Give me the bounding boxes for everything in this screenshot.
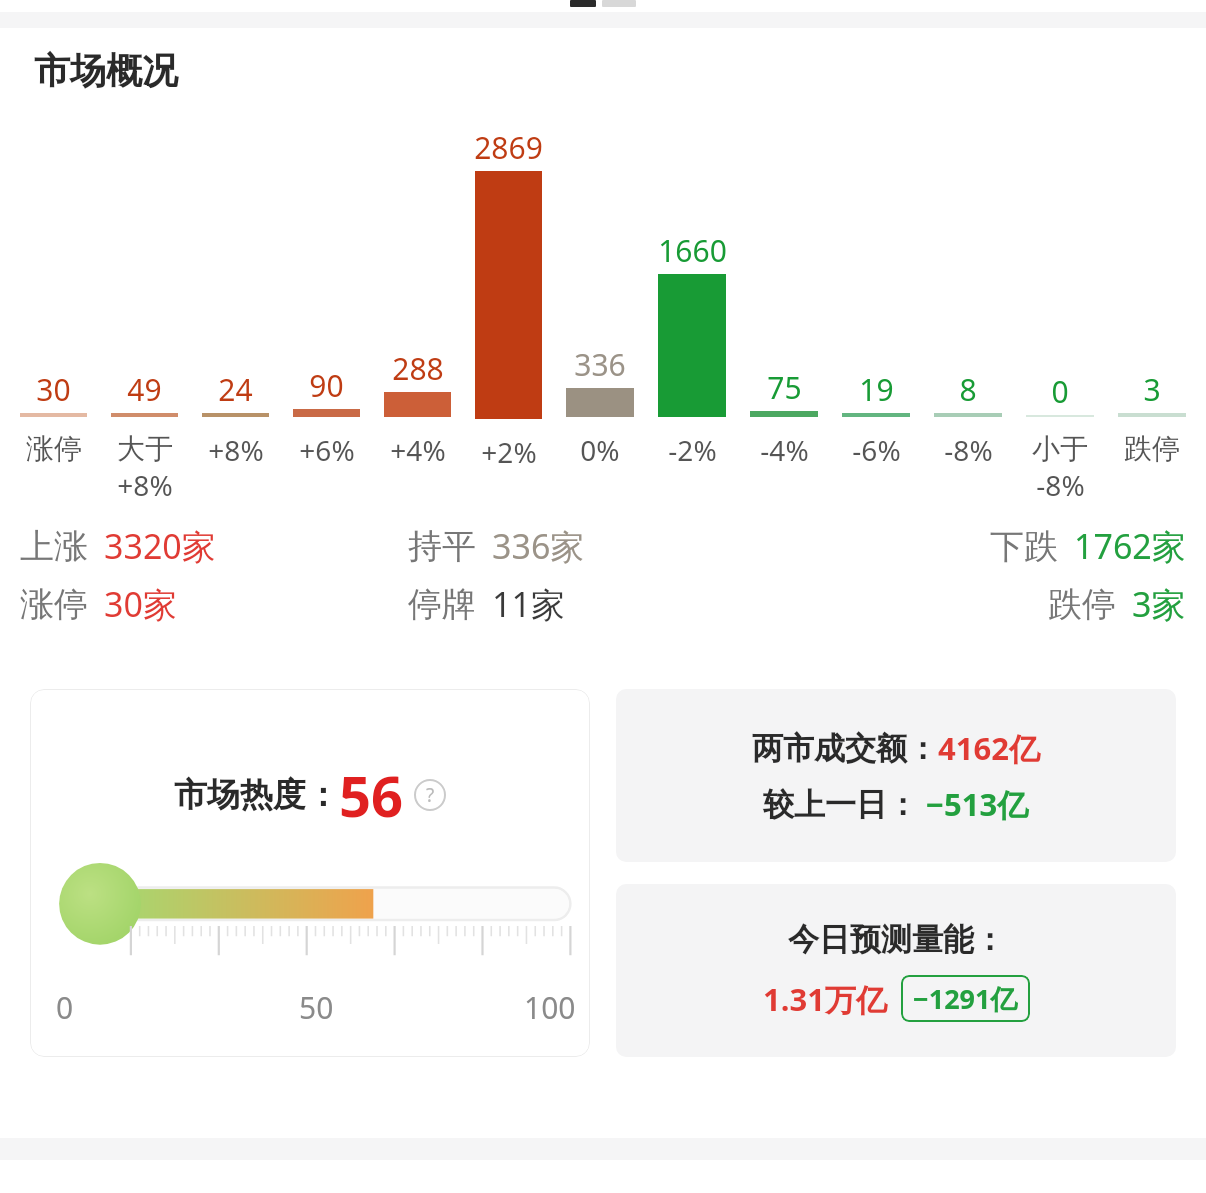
staticText: ? [426, 782, 435, 808]
staticText: 4162亿 [938, 727, 1040, 769]
staticText: 小于 [1032, 431, 1088, 466]
staticText: 市场热度： [174, 774, 339, 816]
button[interactable]: 2869 [463, 127, 554, 497]
staticText: 30家 [104, 581, 177, 627]
staticText: 市场概况 [34, 48, 178, 93]
button[interactable]: 上涨 [20, 523, 408, 569]
button[interactable]: 30 [8, 127, 99, 497]
staticText: -6% [852, 431, 901, 469]
staticText: -8% [944, 431, 993, 469]
staticText: 50 [299, 987, 334, 1028]
button[interactable]: 下跌 [797, 523, 1186, 569]
button[interactable]: 今日预测量能： [616, 884, 1176, 1057]
button[interactable]: 90 [281, 127, 372, 497]
button[interactable]: 跌停 [797, 581, 1186, 627]
staticText: 3 [1143, 369, 1161, 410]
staticText: 0 [1051, 371, 1069, 412]
staticText: -8% [1036, 466, 1085, 497]
button[interactable]: 288 [372, 127, 463, 497]
staticText: +8% [117, 466, 173, 497]
staticText: +2% [481, 433, 537, 471]
staticText: −1291亿 [913, 980, 1018, 1017]
button[interactable]: 1660 [646, 127, 738, 497]
staticText: 336家 [492, 523, 585, 569]
button[interactable]: 0 [1014, 127, 1106, 497]
staticText: 90 [309, 365, 344, 406]
button[interactable]: 持平 [408, 523, 797, 569]
staticText: +4% [390, 431, 446, 469]
button[interactable]: 停牌 [408, 581, 797, 627]
staticText: 0% [580, 431, 620, 469]
staticText: 涨停 [20, 583, 88, 626]
staticText: 30 [36, 369, 71, 410]
staticText: +6% [299, 431, 355, 469]
staticText: 11家 [492, 581, 565, 627]
staticText: 下跌 [990, 525, 1058, 568]
staticText: 19 [859, 369, 894, 410]
staticText: 停牌 [408, 583, 476, 626]
staticText: 8 [959, 369, 977, 410]
staticText: -4% [760, 431, 809, 469]
staticText: 跌停 [1048, 583, 1116, 626]
button[interactable]: 涨停 [20, 581, 408, 627]
button[interactable]: 帮助说明 [414, 779, 446, 811]
staticText: 75 [767, 367, 802, 408]
staticText: 今日预测量能： [788, 920, 1005, 959]
button[interactable]: 市场热度： [30, 689, 590, 1057]
staticText: +8% [208, 431, 264, 469]
staticText: 持平 [408, 525, 476, 568]
staticText: 100 [524, 987, 576, 1028]
button[interactable]: 336 [554, 127, 646, 497]
button[interactable]: 75 [738, 127, 830, 497]
staticText: 24 [218, 369, 253, 410]
staticText: 0 [56, 987, 74, 1028]
staticText: 3320家 [104, 523, 216, 569]
staticText: 49 [127, 369, 162, 410]
staticText: 涨停 [26, 431, 82, 466]
staticText: 两市成交额： [752, 729, 938, 768]
button[interactable]: 3 [1106, 127, 1198, 497]
button[interactable]: 24 [190, 127, 281, 497]
staticText: 1.31万亿 [763, 978, 887, 1020]
staticText: 较上一日： [763, 785, 918, 824]
button[interactable]: 49 [99, 127, 190, 497]
staticText: 56 [339, 757, 404, 833]
button[interactable]: 两市成交额： [616, 689, 1176, 862]
staticText: 1762家 [1074, 523, 1186, 569]
staticText: 跌停 [1124, 431, 1180, 466]
staticText: 1660 [658, 230, 727, 271]
staticText: 3家 [1132, 581, 1186, 627]
staticText: 336 [574, 344, 626, 385]
staticText: −513亿 [918, 783, 1029, 825]
staticText: 288 [392, 348, 444, 389]
staticText: -2% [668, 431, 717, 469]
button[interactable]: 19 [830, 127, 922, 497]
staticText: 上涨 [20, 525, 88, 568]
staticText: 2869 [474, 127, 543, 168]
staticText: 大于 [117, 431, 173, 466]
button[interactable]: 8 [922, 127, 1014, 497]
